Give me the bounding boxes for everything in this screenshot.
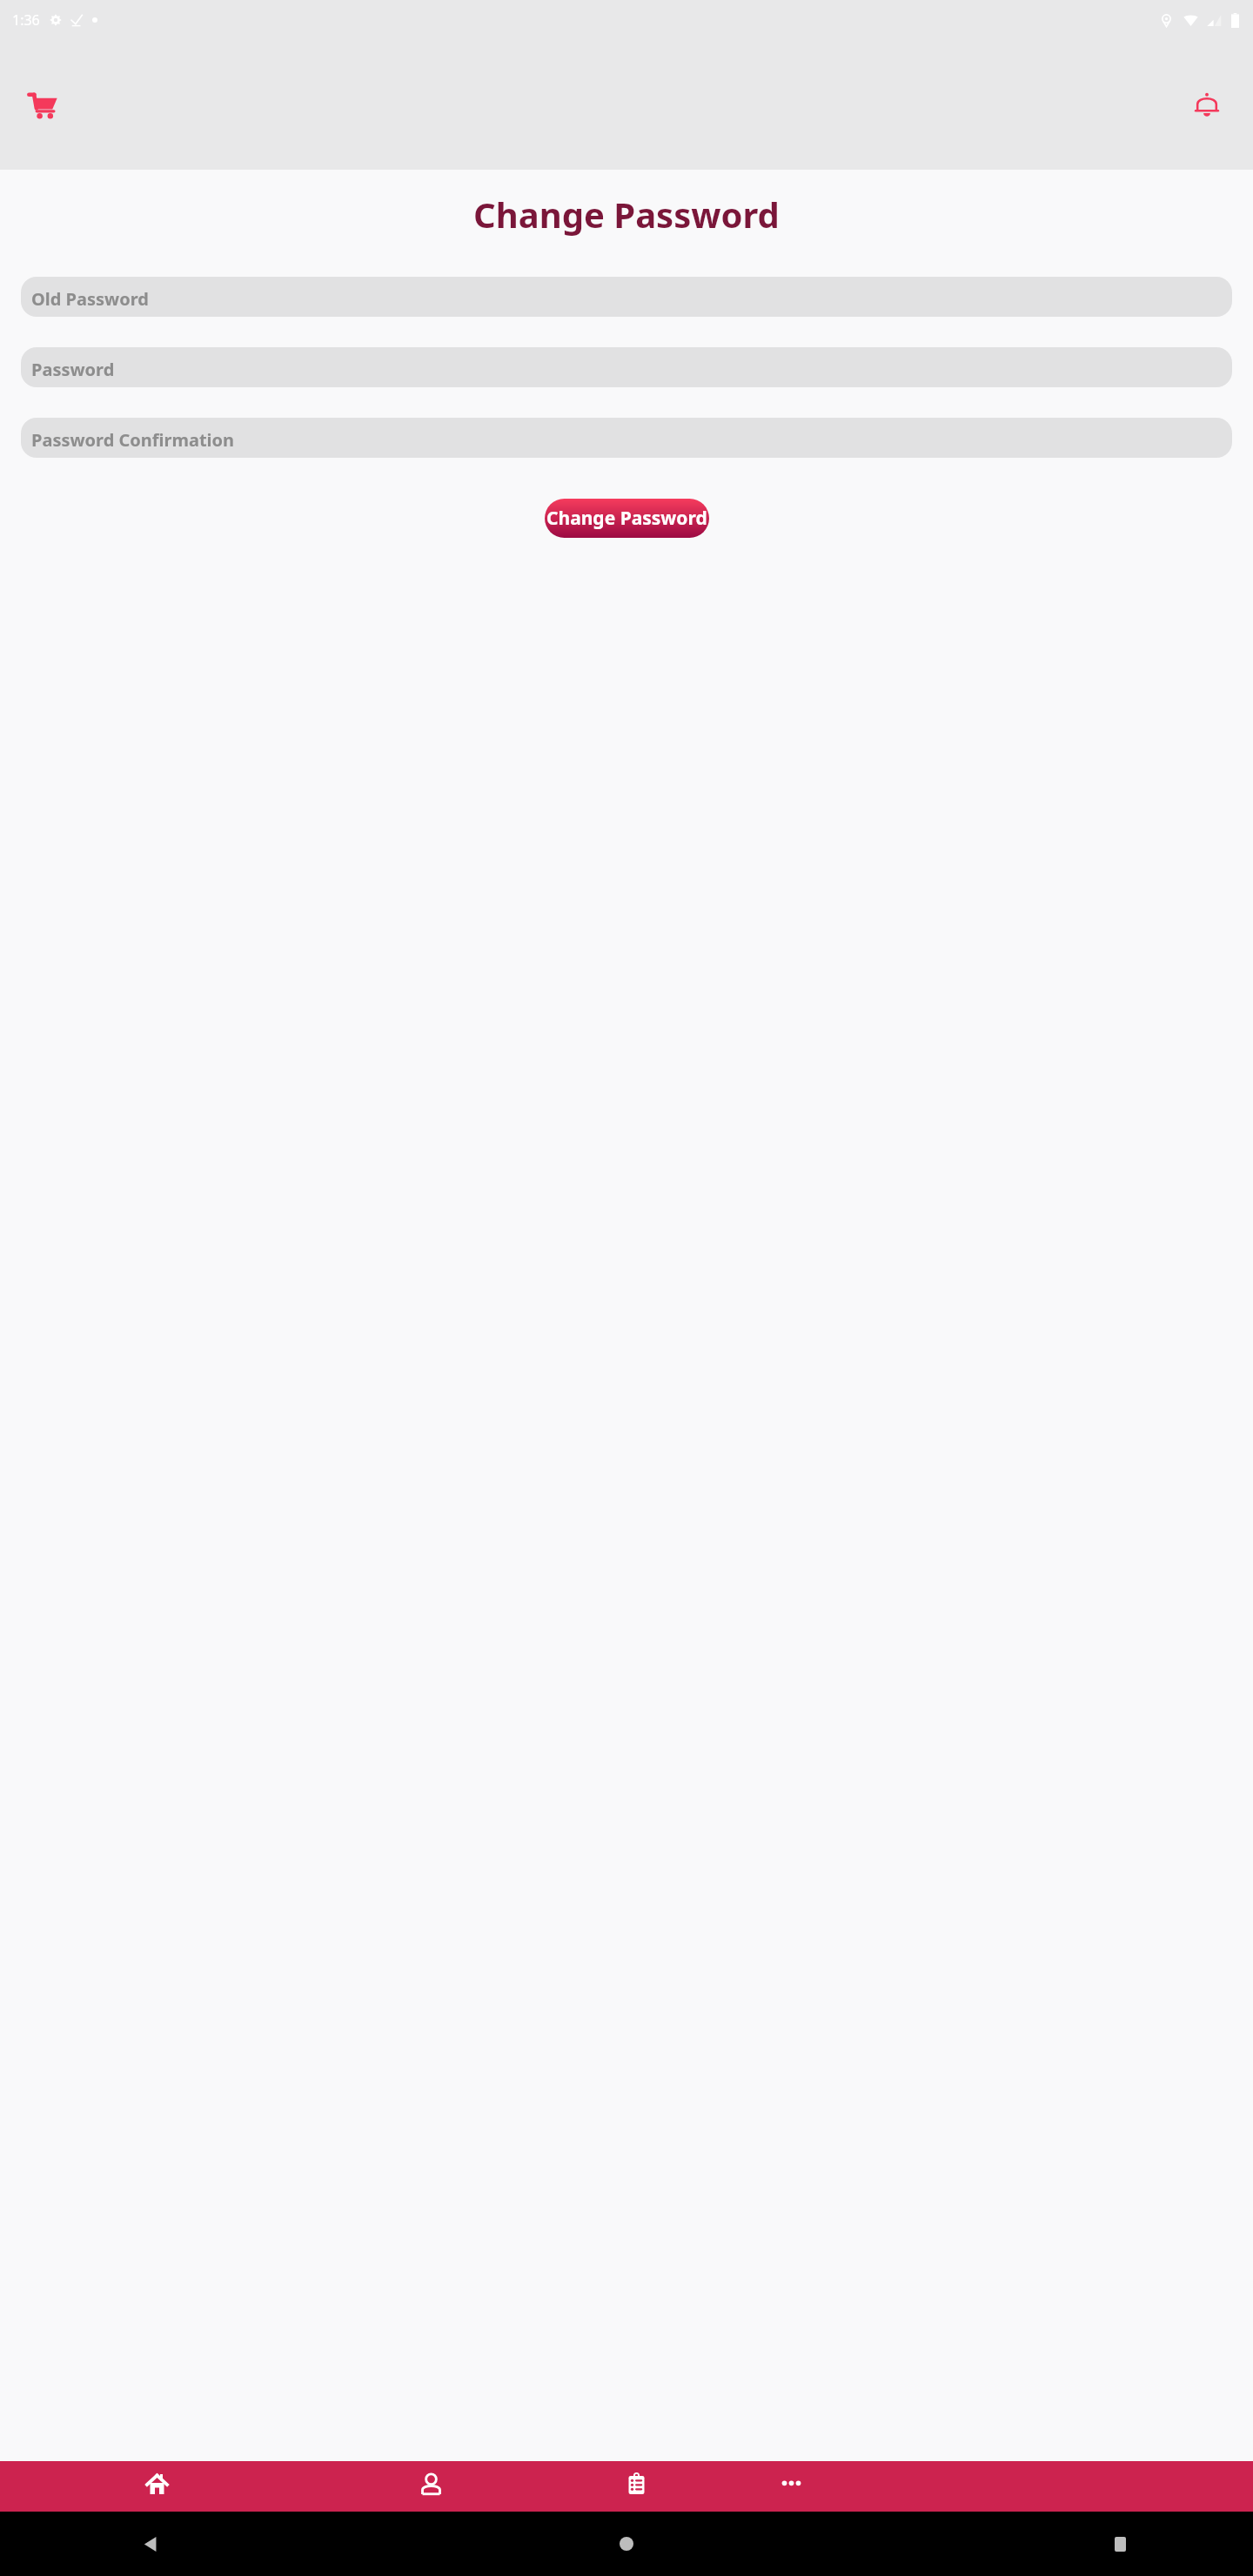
staticText: Password Confirmation bbox=[31, 428, 235, 452]
button[interactable]: Orders bbox=[548, 2461, 725, 2512]
staticText: Password bbox=[31, 358, 115, 381]
button[interactable]: Home bbox=[0, 2461, 313, 2512]
button[interactable]: Cart bbox=[17, 80, 68, 131]
button[interactable]: Password bbox=[21, 347, 1232, 387]
button[interactable]: Home bbox=[606, 2524, 647, 2564]
staticText: Old Password bbox=[31, 287, 149, 311]
button[interactable]: Password Confirmation bbox=[21, 418, 1232, 458]
staticText: Change Password bbox=[546, 506, 707, 531]
button[interactable]: Back bbox=[131, 2524, 171, 2564]
staticText: 1:36 bbox=[12, 10, 40, 30]
staticText: Change Password bbox=[0, 191, 1253, 238]
button[interactable]: Old Password bbox=[21, 277, 1232, 317]
button[interactable]: Profile bbox=[313, 2461, 548, 2512]
button[interactable]: Change Password bbox=[545, 499, 709, 538]
button[interactable]: Notifications bbox=[1182, 80, 1232, 131]
button[interactable]: Recents bbox=[1100, 2524, 1140, 2564]
button[interactable]: More bbox=[725, 2461, 857, 2512]
